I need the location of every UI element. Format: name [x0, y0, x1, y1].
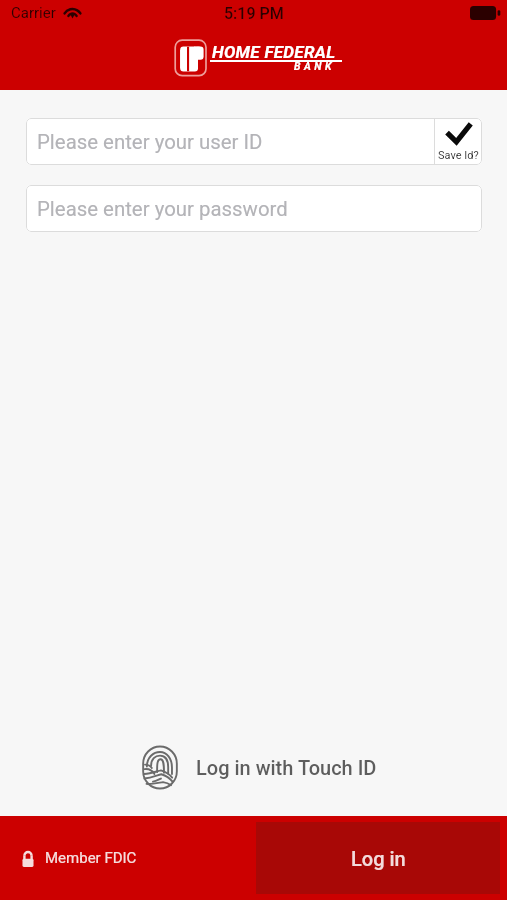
button[interactable]: Log in	[256, 822, 500, 894]
staticText: HOME FEDERAL	[212, 42, 336, 62]
staticText: 5:19 PM	[224, 4, 284, 23]
staticText: Log in with Touch ID	[196, 756, 377, 779]
staticText: Carrier	[11, 4, 56, 22]
staticText: Log in	[351, 847, 406, 870]
staticText: Please enter your password	[37, 197, 288, 221]
staticText: BANK	[294, 60, 336, 72]
staticText: Save Id?	[438, 149, 479, 162]
staticText: Member FDIC	[45, 849, 137, 867]
button[interactable]: Member FDIC	[22, 849, 137, 867]
button[interactable]: Please enter your password	[26, 185, 482, 232]
staticText: Please enter your user ID	[37, 130, 263, 154]
button[interactable]: Log in with Touch ID	[5, 740, 507, 794]
button[interactable]: Save Id	[435, 118, 482, 165]
button[interactable]: Please enter your user ID	[26, 118, 434, 165]
